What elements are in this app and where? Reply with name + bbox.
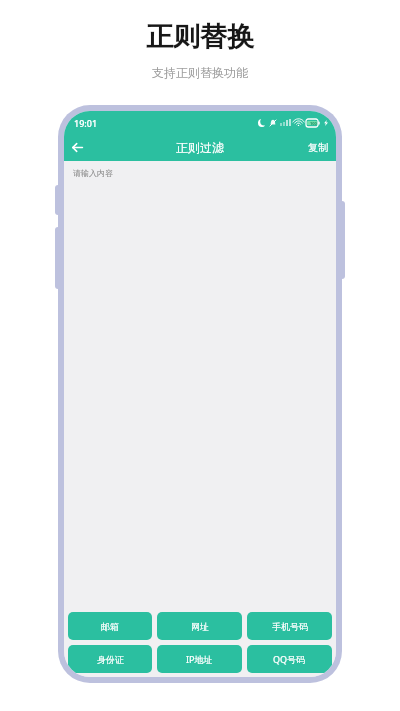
staticText: 正则过滤 xyxy=(176,140,224,155)
staticText: 请输入内容 xyxy=(73,168,113,178)
button[interactable]: 网址 xyxy=(157,612,242,640)
button[interactable]: 复制 xyxy=(300,137,336,158)
staticText: 身份证 xyxy=(97,654,124,665)
staticText: QQ号码 xyxy=(273,653,306,665)
button[interactable]: 身份证 xyxy=(68,645,152,673)
staticText: 复制 xyxy=(308,141,328,154)
staticText: 19:01 xyxy=(74,117,98,129)
staticText: 网址 xyxy=(191,621,209,632)
staticText: 邮箱 xyxy=(101,621,119,632)
button[interactable]: QQ号码 xyxy=(247,645,332,673)
button[interactable]: Back xyxy=(64,134,91,161)
button[interactable]: 手机号码 xyxy=(247,612,332,640)
button[interactable]: IP地址 xyxy=(157,645,242,673)
button[interactable]: 邮箱 xyxy=(68,612,152,640)
staticText: 手机号码 xyxy=(272,621,308,632)
staticText: 支持正则替换功能 xyxy=(152,65,248,80)
staticText: IP地址 xyxy=(186,653,213,665)
staticText: 100 xyxy=(310,121,317,126)
staticText: 正则替换 xyxy=(146,20,254,54)
